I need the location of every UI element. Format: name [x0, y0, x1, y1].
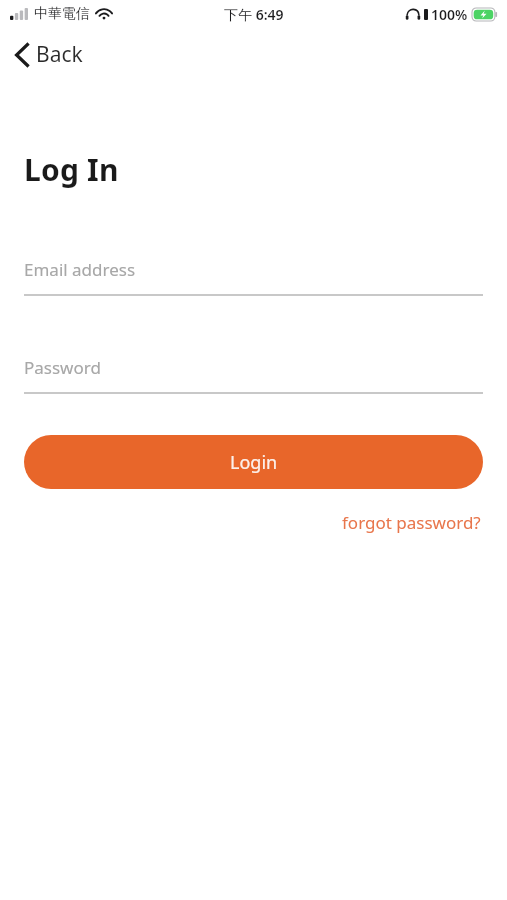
staticText: 中華電信 [34, 5, 90, 23]
button[interactable]: Password [24, 356, 483, 394]
button[interactable]: Back [8, 36, 95, 73]
staticText: Login [230, 450, 278, 475]
staticText: Back [36, 40, 83, 69]
staticText: Email address [24, 258, 136, 281]
staticText: 下午 6:49 [224, 5, 284, 24]
staticText: 100% [431, 5, 468, 24]
button[interactable]: Email address [24, 258, 483, 296]
staticText: Log In [24, 149, 119, 190]
button[interactable]: Login [24, 435, 483, 489]
staticText: forgot password? [342, 511, 481, 534]
button[interactable]: forgot password? [340, 509, 483, 536]
staticText: Password [24, 356, 101, 379]
